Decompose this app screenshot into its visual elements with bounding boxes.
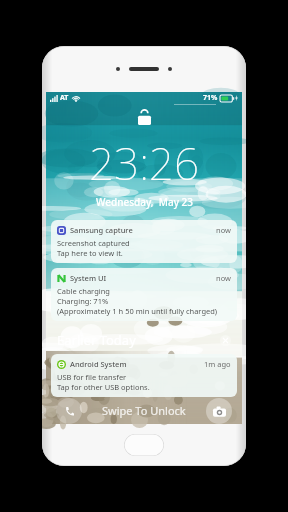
button[interactable]: Camera: [206, 398, 232, 424]
staticText: Swipe To Unlock: [102, 403, 186, 418]
staticText: USB for file transfer: [57, 372, 127, 382]
staticText: 23:26: [89, 133, 199, 193]
button[interactable]: Phone: [56, 398, 82, 424]
button[interactable]: System UI: [51, 268, 237, 321]
staticText: 1m ago: [204, 359, 231, 369]
staticText: Tap here to view it.: [57, 248, 123, 258]
staticText: Wednesday, May 23: [96, 195, 193, 209]
staticText: Android System: [70, 359, 127, 369]
button[interactable]: Clear all notifications: [220, 335, 231, 346]
button[interactable]: Home: [124, 434, 164, 456]
staticText: Tap for other USB options.: [57, 382, 150, 392]
staticText: Screenshot captured: [57, 238, 130, 248]
staticText: 71%: [203, 93, 218, 103]
staticText: System UI: [70, 273, 107, 283]
staticText: now: [216, 225, 231, 235]
button[interactable]: Samsung capture: [51, 220, 237, 263]
button[interactable]: Android System: [51, 354, 237, 397]
staticText: now: [216, 273, 231, 283]
staticText: AT: [60, 93, 69, 103]
staticText: Earlier Today: [57, 331, 136, 349]
staticText: Cable charging: [57, 286, 110, 296]
staticText: Samsung capture: [70, 225, 133, 235]
staticText: Charging: 71%: [57, 296, 109, 306]
staticText: (Approximately 1 h 50 min until fully ch…: [57, 306, 218, 316]
